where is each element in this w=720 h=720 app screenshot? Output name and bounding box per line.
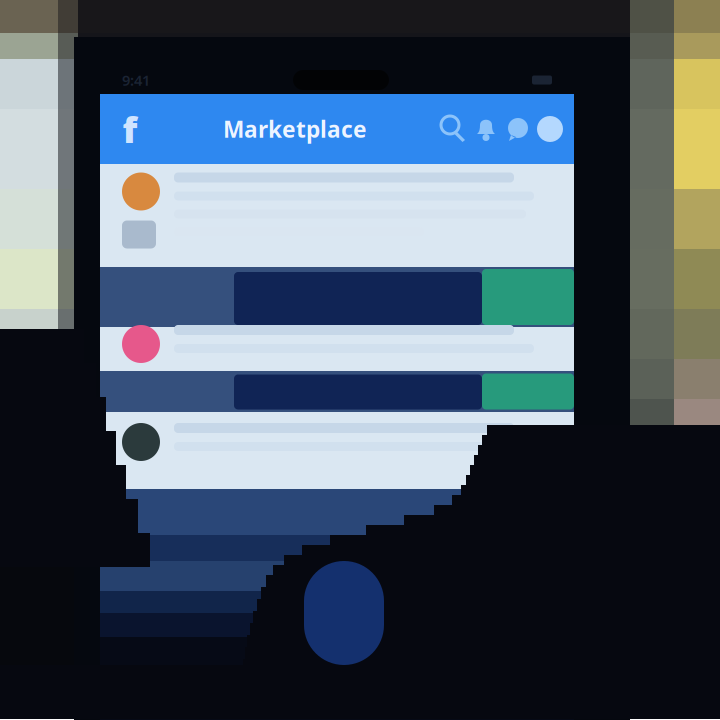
- button[interactable]: Home: [108, 107, 152, 151]
- staticText: f: [122, 105, 137, 153]
- staticText: 9:41: [122, 70, 150, 90]
- staticText: Marketplace: [223, 114, 367, 144]
- button[interactable]: [100, 164, 574, 267]
- button[interactable]: Search: [438, 107, 470, 151]
- button[interactable]: Profile: [534, 107, 566, 151]
- button[interactable]: Messages: [502, 107, 534, 151]
- button[interactable]: Notifications: [470, 107, 502, 151]
- button[interactable]: [100, 412, 574, 489]
- button[interactable]: [100, 327, 574, 371]
- button[interactable]: Buy now: [482, 373, 574, 409]
- button[interactable]: Buy now: [482, 269, 574, 325]
